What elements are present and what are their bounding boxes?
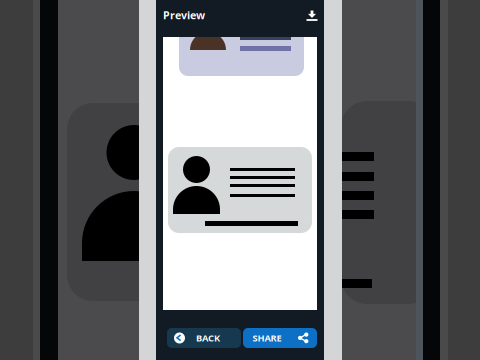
button[interactable]: SHARE — [243, 328, 317, 348]
button[interactable]: BACK — [167, 328, 241, 348]
button[interactable]: Download — [302, 6, 322, 26]
staticText: Preview — [163, 8, 205, 22]
button[interactable]: Preview — [163, 8, 223, 22]
staticText: SHARE — [252, 332, 281, 344]
staticText: BACK — [196, 332, 220, 344]
